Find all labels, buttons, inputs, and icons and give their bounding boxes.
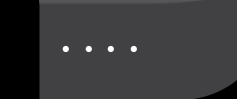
button[interactable]: Page 1 of 4 <box>55 38 77 60</box>
button[interactable]: Page 4 of 4 <box>123 38 145 60</box>
button[interactable]: Page 3 of 4 <box>100 38 122 60</box>
button[interactable]: Page 2 of 4 <box>78 38 100 60</box>
